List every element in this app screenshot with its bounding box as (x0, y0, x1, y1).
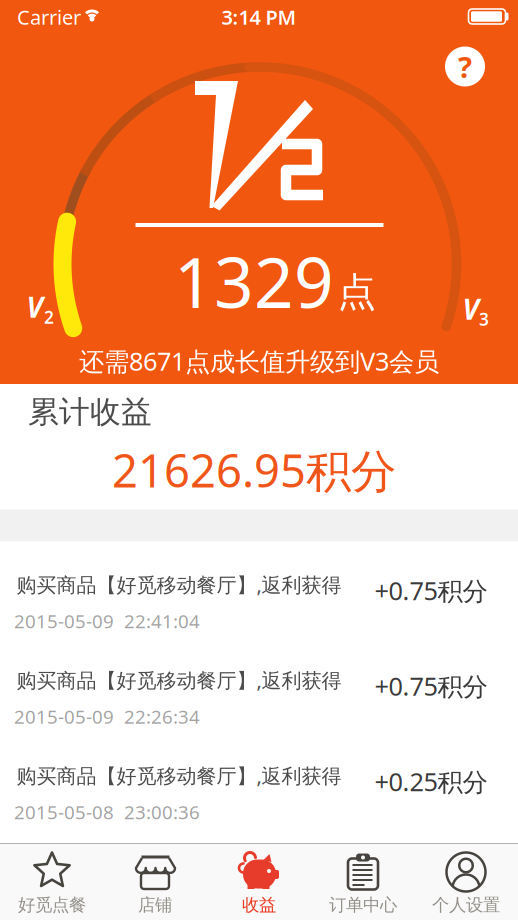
staticText: 2015-05-08 23:00:36 (14, 800, 200, 824)
staticText: 3 (479, 307, 489, 330)
staticText: ? (458, 47, 472, 86)
staticText: V (26, 288, 43, 326)
button[interactable]: ? (445, 46, 485, 86)
staticText: 21626.95积分 (112, 440, 396, 500)
staticText: 个人设置 (432, 894, 500, 916)
staticText: 累计收益 (28, 393, 152, 431)
staticText: 2015-05-09 22:41:04 (14, 609, 200, 633)
staticText: 2 (44, 305, 54, 328)
button[interactable]: 收益 (207, 844, 310, 920)
button[interactable]: 购买商品【好觅移动餐厅】,返利获得 (0, 732, 518, 828)
staticText: V (462, 290, 479, 328)
staticText: 购买商品【好觅移动餐厅】,返利获得 (16, 667, 341, 693)
staticText: +0.75积分 (374, 574, 487, 607)
button[interactable]: 订单中心 (311, 844, 414, 920)
staticText: 购买商品【好觅移动餐厅】,返利获得 (16, 571, 341, 598)
staticText: 收益 (242, 894, 276, 916)
staticText: 订单中心 (329, 894, 397, 916)
button[interactable]: 购买商品【好觅移动餐厅】,返利获得 (0, 541, 518, 637)
button[interactable]: 店铺 (103, 844, 206, 920)
staticText: +0.25积分 (374, 765, 487, 798)
button[interactable]: 好觅点餐 (0, 844, 103, 920)
staticText: 1329 (174, 235, 334, 327)
staticText: 还需8671点成长值升级到V3会员 (79, 344, 439, 378)
staticText: 点 (337, 268, 376, 316)
staticText: 店铺 (138, 894, 172, 916)
staticText: +0.75积分 (374, 669, 487, 703)
button[interactable]: 购买商品【好觅移动餐厅】,返利获得 (0, 637, 518, 732)
staticText: Carrier (17, 4, 81, 30)
staticText: 2015-05-09 22:26:34 (14, 704, 200, 729)
staticText: 购买商品【好觅移动餐厅】,返利获得 (16, 762, 341, 789)
staticText: 3:14 PM (221, 4, 296, 30)
button[interactable]: 个人设置 (414, 844, 517, 920)
staticText: 好觅点餐 (18, 894, 86, 916)
